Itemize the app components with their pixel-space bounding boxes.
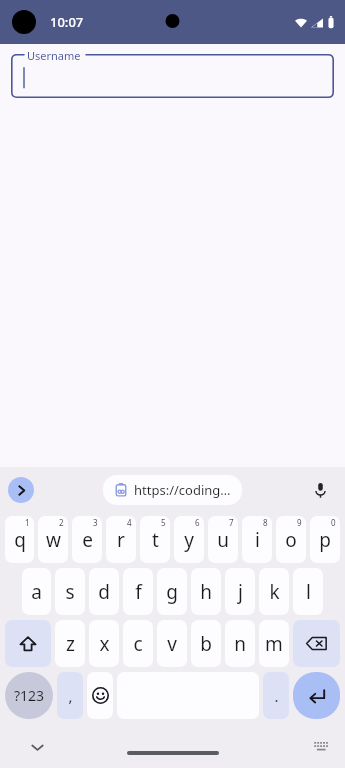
button[interactable]: j bbox=[225, 568, 255, 615]
staticText: 2 bbox=[59, 517, 64, 528]
button[interactable]: d bbox=[89, 568, 119, 615]
button[interactable]: e bbox=[72, 516, 102, 563]
staticText: o bbox=[285, 527, 297, 553]
staticText: w bbox=[46, 527, 61, 553]
button[interactable]: y bbox=[174, 516, 204, 563]
button[interactable]: u bbox=[208, 516, 238, 563]
staticText: ?123 bbox=[14, 686, 45, 705]
button[interactable]: l bbox=[293, 568, 323, 615]
button[interactable]: m bbox=[259, 620, 289, 667]
button[interactable]: Shift bbox=[5, 620, 51, 667]
button[interactable]: x bbox=[89, 620, 119, 667]
staticText: 3 bbox=[93, 517, 98, 528]
staticText: 7 bbox=[229, 517, 234, 528]
staticText: z bbox=[66, 631, 75, 657]
button[interactable]: n bbox=[225, 620, 255, 667]
staticText: g bbox=[166, 579, 178, 605]
staticText: x bbox=[99, 631, 110, 657]
staticText: j bbox=[238, 579, 243, 605]
button[interactable]: t bbox=[140, 516, 170, 563]
staticText: https://coding… bbox=[134, 481, 231, 499]
button[interactable]: r bbox=[106, 516, 136, 563]
staticText: h bbox=[200, 579, 212, 605]
button[interactable]: w bbox=[38, 516, 68, 563]
staticText: b bbox=[200, 631, 212, 657]
staticText: 6 bbox=[195, 517, 200, 528]
staticText: 9 bbox=[297, 517, 302, 528]
staticText: c bbox=[133, 631, 143, 657]
staticText: e bbox=[82, 527, 93, 553]
button[interactable]: Backspace bbox=[293, 620, 340, 667]
button[interactable]: a bbox=[22, 568, 51, 615]
staticText: 8 bbox=[263, 517, 268, 528]
button[interactable]: q bbox=[5, 516, 34, 563]
staticText: q bbox=[14, 527, 26, 553]
staticText: t bbox=[152, 527, 159, 553]
staticText: r bbox=[117, 527, 125, 553]
button[interactable]: Enter bbox=[293, 672, 340, 719]
staticText: v bbox=[167, 631, 177, 657]
staticText: a bbox=[31, 579, 42, 605]
staticText: 5 bbox=[161, 517, 166, 528]
button[interactable]: z bbox=[55, 620, 85, 667]
staticText: 4 bbox=[127, 517, 132, 528]
button[interactable]: k bbox=[259, 568, 289, 615]
staticText: l bbox=[306, 579, 311, 605]
button[interactable]: v bbox=[157, 620, 187, 667]
button[interactable]: , bbox=[57, 672, 83, 719]
button[interactable]: https://coding… bbox=[103, 475, 242, 505]
button[interactable]: Voice input bbox=[307, 477, 333, 503]
button[interactable]: i bbox=[242, 516, 272, 563]
staticText: y bbox=[184, 527, 194, 553]
button[interactable]: f bbox=[123, 568, 153, 615]
staticText: 0 bbox=[331, 517, 336, 528]
button[interactable]: o bbox=[276, 516, 306, 563]
staticText: s bbox=[65, 579, 75, 605]
staticText: i bbox=[255, 527, 260, 553]
button[interactable]: s bbox=[55, 568, 85, 615]
staticText: , bbox=[68, 686, 73, 706]
button[interactable]: p bbox=[310, 516, 340, 563]
staticText: k bbox=[269, 579, 280, 605]
button[interactable]: . bbox=[263, 672, 289, 719]
button[interactable]: h bbox=[191, 568, 221, 615]
staticText: 10:07 bbox=[50, 13, 84, 31]
button[interactable]: b bbox=[191, 620, 221, 667]
button[interactable]: c bbox=[123, 620, 153, 667]
button[interactable]: Username bbox=[11, 54, 334, 98]
staticText: f bbox=[135, 579, 142, 605]
staticText: m bbox=[265, 631, 283, 657]
button[interactable]: g bbox=[157, 568, 187, 615]
button[interactable]: Switch keyboard bbox=[309, 735, 333, 759]
staticText: p bbox=[319, 527, 331, 553]
staticText: . bbox=[274, 686, 279, 706]
button[interactable]: Hide keyboard bbox=[24, 734, 50, 760]
button[interactable]: ?123 bbox=[5, 672, 53, 719]
staticText: 1 bbox=[25, 517, 30, 528]
staticText: d bbox=[98, 579, 110, 605]
staticText: n bbox=[234, 631, 246, 657]
staticText: Username bbox=[27, 48, 81, 63]
staticText: u bbox=[217, 527, 229, 553]
button[interactable]: Emoji bbox=[87, 672, 113, 719]
button[interactable]: Expand suggestions bbox=[8, 477, 34, 503]
